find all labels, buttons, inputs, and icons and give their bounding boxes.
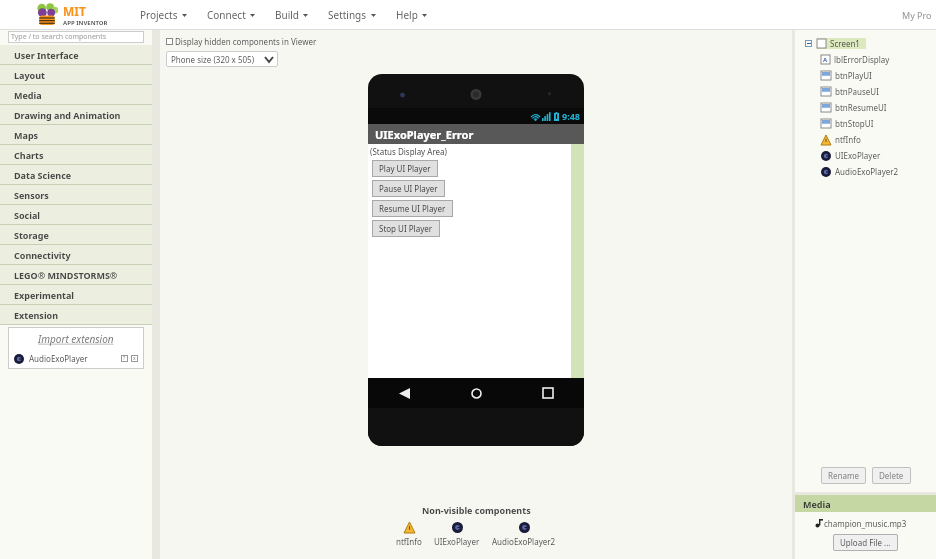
staticText: Import extension: [38, 332, 114, 346]
button[interactable]: My Pro: [902, 9, 936, 21]
button[interactable]: AudioExoPlayer2: [795, 163, 936, 179]
staticText: Charts: [14, 149, 44, 161]
button[interactable]: UIExoPlayer: [434, 522, 480, 547]
staticText: champion_music.mp3: [824, 518, 907, 529]
button[interactable]: Screen1: [795, 35, 936, 51]
button[interactable]: Play UI Player: [372, 160, 438, 177]
staticText: Connectivity: [14, 249, 71, 261]
button[interactable]: Projects: [130, 2, 197, 28]
button[interactable]: btnPauseUI: [795, 83, 936, 99]
button[interactable]: User Interface: [0, 45, 152, 65]
staticText: Social: [14, 209, 40, 221]
button[interactable]: Storage: [0, 225, 152, 245]
button[interactable]: UIExoPlayer: [795, 147, 936, 163]
button[interactable]: A: [795, 51, 936, 67]
button[interactable]: Type / to search components: [8, 31, 144, 43]
staticText: AudioExoPlayer: [29, 353, 88, 364]
button[interactable]: Home: [440, 378, 512, 408]
button[interactable]: Recent apps: [512, 378, 584, 408]
staticText: btnPlayUI: [835, 70, 872, 81]
button[interactable]: Back: [368, 378, 440, 408]
button[interactable]: Drawing and Animation: [0, 105, 152, 125]
button[interactable]: Pause UI Player: [372, 180, 445, 197]
button[interactable]: Resume UI Player: [372, 200, 453, 217]
staticText: Upload File ...: [840, 537, 891, 548]
staticText: Connect: [207, 8, 246, 22]
button[interactable]: Data Science: [0, 165, 152, 185]
staticText: AudioExoPlayer2: [492, 536, 556, 547]
staticText: Media: [14, 89, 42, 101]
staticText: btnPauseUI: [835, 86, 879, 97]
button[interactable]: Display hidden components in Viewer: [166, 36, 792, 47]
staticText: Resume UI Player: [379, 203, 446, 214]
staticText: 9:48: [562, 110, 580, 122]
button[interactable]: Settings: [318, 2, 386, 28]
button[interactable]: Delete: [872, 467, 911, 484]
staticText: Layout: [14, 69, 45, 81]
staticText: LEGO® MINDSTORMS®: [14, 269, 118, 281]
button[interactable]: Maps: [0, 125, 152, 145]
button[interactable]: ntfInfo: [396, 522, 422, 547]
staticText: Non-visible components: [422, 504, 531, 516]
button[interactable]: Import extension: [8, 332, 144, 346]
staticText: UIExoPlayer: [434, 536, 480, 547]
button[interactable]: Charts: [0, 145, 152, 165]
staticText: btnStopUI: [835, 118, 874, 129]
staticText: My Pro: [902, 9, 932, 21]
staticText: Screen1: [830, 38, 860, 49]
staticText: ?: [123, 355, 126, 362]
staticText: UIExoPlayer: [835, 150, 881, 161]
staticText: lblErrorDisplay: [834, 54, 890, 65]
staticText: Projects: [140, 8, 178, 22]
staticText: Rename: [828, 470, 859, 481]
button[interactable]: Layout: [0, 65, 152, 85]
staticText: APP INVENTOR: [63, 19, 108, 27]
button[interactable]: AudioExoPlayer: [8, 353, 144, 364]
button[interactable]: champion_music.mp3: [815, 518, 936, 529]
button[interactable]: Social: [0, 205, 152, 225]
button[interactable]: btnStopUI: [795, 115, 936, 131]
staticText: Data Science: [14, 169, 72, 181]
staticText: btnResumeUI: [835, 102, 887, 113]
button[interactable]: LEGO® MINDSTORMS®: [0, 265, 152, 285]
button[interactable]: ntfInfo: [795, 131, 936, 147]
button[interactable]: MIT: [34, 3, 108, 27]
staticText: Experimental: [14, 289, 74, 301]
staticText: Pause UI Player: [379, 183, 438, 194]
staticText: A: [823, 56, 828, 64]
button[interactable]: Connectivity: [0, 245, 152, 265]
button[interactable]: AudioExoPlayer2: [492, 522, 556, 547]
button[interactable]: btnResumeUI: [795, 99, 936, 115]
staticText: ntfInfo: [835, 134, 861, 145]
staticText: Delete: [879, 470, 904, 481]
button[interactable]: (Status Display Area): [370, 146, 447, 157]
staticText: Sensors: [14, 189, 49, 201]
button[interactable]: Build: [265, 2, 318, 28]
button[interactable]: Connect: [197, 2, 265, 28]
button[interactable]: Sensors: [0, 185, 152, 205]
button[interactable]: Upload File ...: [833, 534, 898, 551]
staticText: Build: [275, 8, 299, 22]
button[interactable]: Help: [386, 2, 437, 28]
staticText: AudioExoPlayer2: [835, 166, 899, 177]
staticText: Media: [803, 498, 831, 510]
staticText: Phone size (320 x 505): [171, 54, 255, 65]
staticText: UIExoPlayer_Error: [375, 127, 474, 142]
button[interactable]: Phone size (320 x 505): [166, 51, 278, 67]
staticText: Maps: [14, 129, 39, 141]
button[interactable]: Rename: [821, 467, 866, 484]
button[interactable]: btnPlayUI: [795, 67, 936, 83]
staticText: Storage: [14, 229, 49, 241]
staticText: Settings: [328, 8, 367, 22]
button[interactable]: Experimental: [0, 285, 152, 305]
staticText: Drawing and Animation: [14, 109, 121, 121]
button[interactable]: Stop UI Player: [372, 220, 440, 237]
staticText: Type / to search components: [11, 32, 107, 42]
staticText: x: [133, 355, 136, 362]
staticText: Display hidden components in Viewer: [175, 36, 317, 47]
button[interactable]: Media: [0, 85, 152, 105]
staticText: Extension: [14, 309, 59, 321]
button[interactable]: Extension: [0, 305, 152, 325]
staticText: MIT: [63, 3, 86, 19]
staticText: ntfInfo: [396, 536, 422, 547]
